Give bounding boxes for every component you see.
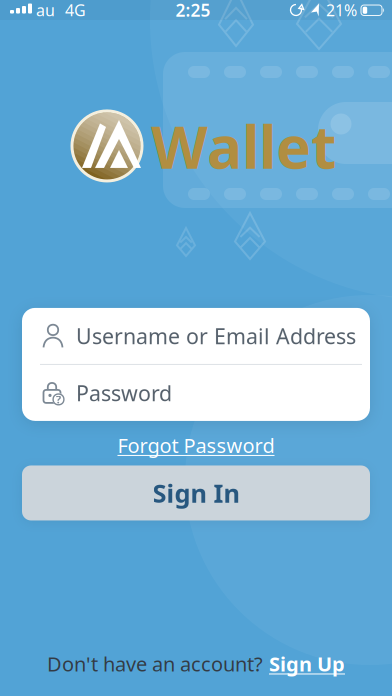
staticText: Don't have an account? (47, 650, 263, 677)
staticText: Username or Email Address (76, 322, 356, 350)
staticText: Sign Up (269, 650, 345, 677)
staticText: 21% (326, 0, 357, 21)
button[interactable]: Username or Email Address (22, 308, 370, 364)
button[interactable]: ? (22, 365, 370, 421)
staticText: au (36, 0, 55, 21)
button[interactable]: Forgot Password (117, 432, 274, 458)
button[interactable]: Sign In (22, 465, 370, 520)
staticText: Forgot Password (117, 432, 274, 458)
staticText: Password (76, 379, 172, 407)
staticText: Sign In (152, 476, 239, 510)
staticText: 4G (65, 0, 86, 21)
staticText: Wallet (151, 107, 336, 185)
button[interactable]: Sign Up (269, 650, 345, 677)
staticText: 2:25 (175, 0, 210, 21)
staticText: ? (56, 392, 61, 406)
